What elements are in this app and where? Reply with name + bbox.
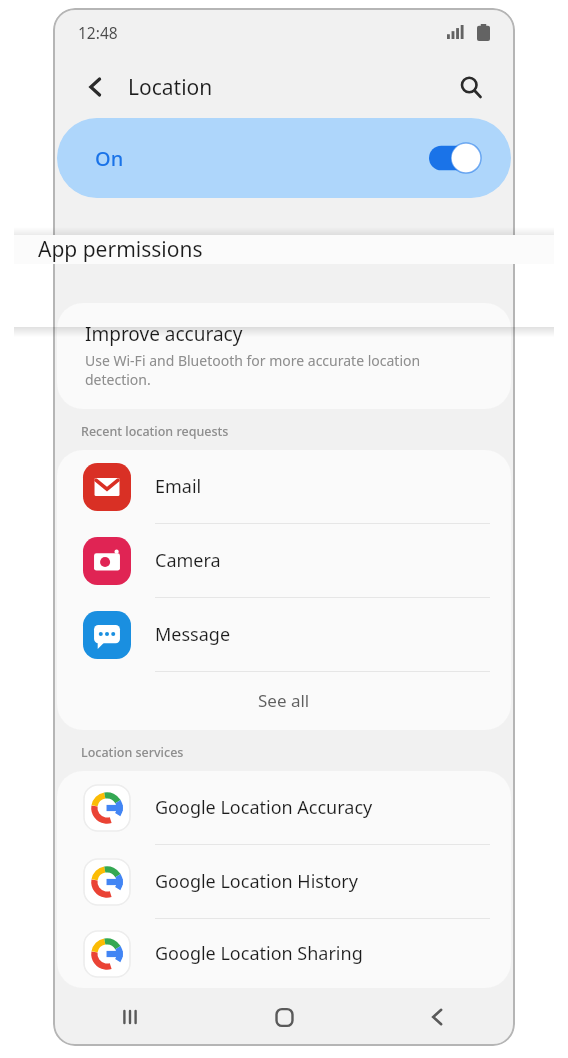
button[interactable]: Improve accuracy [57,303,511,409]
button[interactable]: Recent apps [53,988,207,1046]
button[interactable]: See all [57,672,511,730]
staticText: Message [155,622,231,647]
button[interactable]: Search [449,65,493,109]
staticText: 12:48 [78,22,118,43]
staticText: App permissions [38,235,203,264]
staticText: Location services [81,744,184,761]
staticText: Recent location requests [81,423,229,440]
staticText: Location [128,73,213,102]
staticText: Google Location Accuracy [155,795,373,820]
staticText: Improve accuracy [85,321,243,347]
button[interactable]: On [57,118,511,198]
button[interactable]: Google Location History [57,845,511,919]
staticText: See all [258,689,310,712]
button[interactable]: Email [57,450,511,524]
button[interactable]: Back [75,66,117,108]
staticText: Use Wi-Fi and Bluetooth for more accurat… [85,351,487,389]
button[interactable]: Home [207,988,361,1046]
staticText: Google Location History [155,869,358,894]
button[interactable]: Google Location Accuracy [57,771,511,845]
staticText: Email [155,474,202,499]
staticText: Camera [155,548,221,573]
button[interactable]: Camera [57,524,511,598]
button[interactable]: Message [57,598,511,672]
button[interactable]: Back [361,988,515,1046]
button[interactable]: Google Location Sharing [57,919,511,988]
button[interactable]: App permissions [14,235,554,264]
staticText: On [95,145,124,172]
staticText: Google Location Sharing [155,941,363,966]
